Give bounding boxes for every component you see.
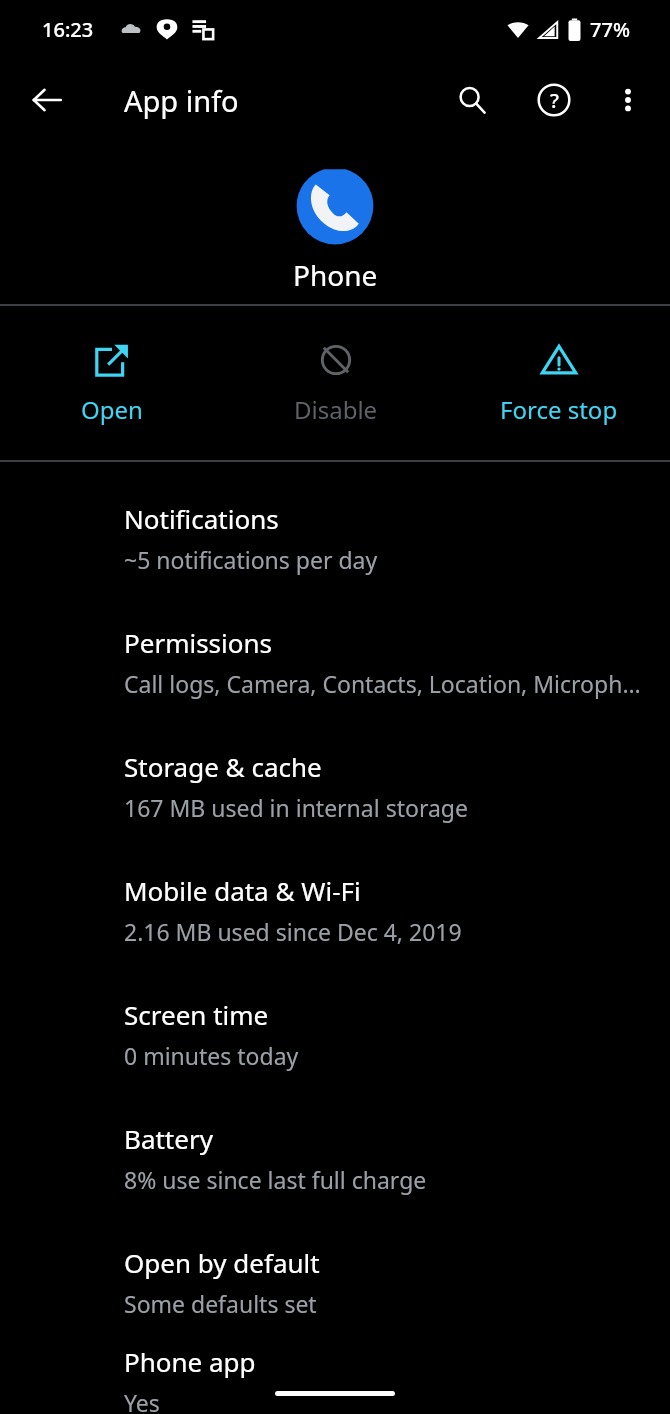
staticText: Open — [81, 393, 143, 426]
staticText: Mobile data & Wi-Fi — [124, 873, 361, 908]
button[interactable]: Search — [444, 72, 500, 128]
staticText: Yes — [124, 1387, 160, 1414]
button[interactable]: Back — [20, 73, 74, 127]
staticText: App info — [124, 81, 239, 120]
staticText: 2.16 MB used since Dec 4, 2019 — [124, 916, 462, 947]
button[interactable]: Storage & cache — [0, 724, 670, 848]
button[interactable]: Open — [0, 306, 224, 460]
button[interactable]: Force stop — [447, 306, 670, 460]
staticText: 16:23 — [42, 16, 94, 43]
staticText: 0 minutes today — [124, 1040, 299, 1071]
staticText: Phone app — [124, 1344, 256, 1379]
button[interactable]: Mobile data & Wi-Fi — [0, 848, 670, 972]
staticText: 77% — [590, 16, 630, 43]
staticText: Notifications — [124, 501, 279, 536]
staticText: Call logs, Camera, Contacts, Location, M… — [124, 668, 641, 699]
button[interactable]: Permissions — [0, 600, 670, 724]
button[interactable]: Phone app — [0, 1344, 670, 1414]
button[interactable]: Help — [526, 72, 582, 128]
staticText: Storage & cache — [124, 749, 322, 784]
button[interactable]: More options — [600, 72, 656, 128]
staticText: ~5 notifications per day — [124, 544, 378, 575]
button[interactable]: Notifications — [0, 476, 670, 600]
staticText: Disable — [294, 393, 378, 426]
staticText: Some defaults set — [124, 1288, 317, 1319]
staticText: Force stop — [500, 393, 618, 426]
button[interactable]: Open by default — [0, 1220, 670, 1344]
staticText: 167 MB used in internal storage — [124, 792, 468, 823]
staticText: Screen time — [124, 997, 269, 1032]
staticText: Open by default — [124, 1245, 320, 1280]
staticText: 8% use since last full charge — [124, 1164, 427, 1195]
staticText: Phone — [293, 256, 378, 294]
staticText: Permissions — [124, 625, 273, 660]
button[interactable]: Disable — [224, 306, 447, 460]
button[interactable]: Screen time — [0, 972, 670, 1096]
staticText: ? — [550, 87, 559, 114]
staticText: Battery — [124, 1121, 213, 1156]
button[interactable]: Battery — [0, 1096, 670, 1220]
